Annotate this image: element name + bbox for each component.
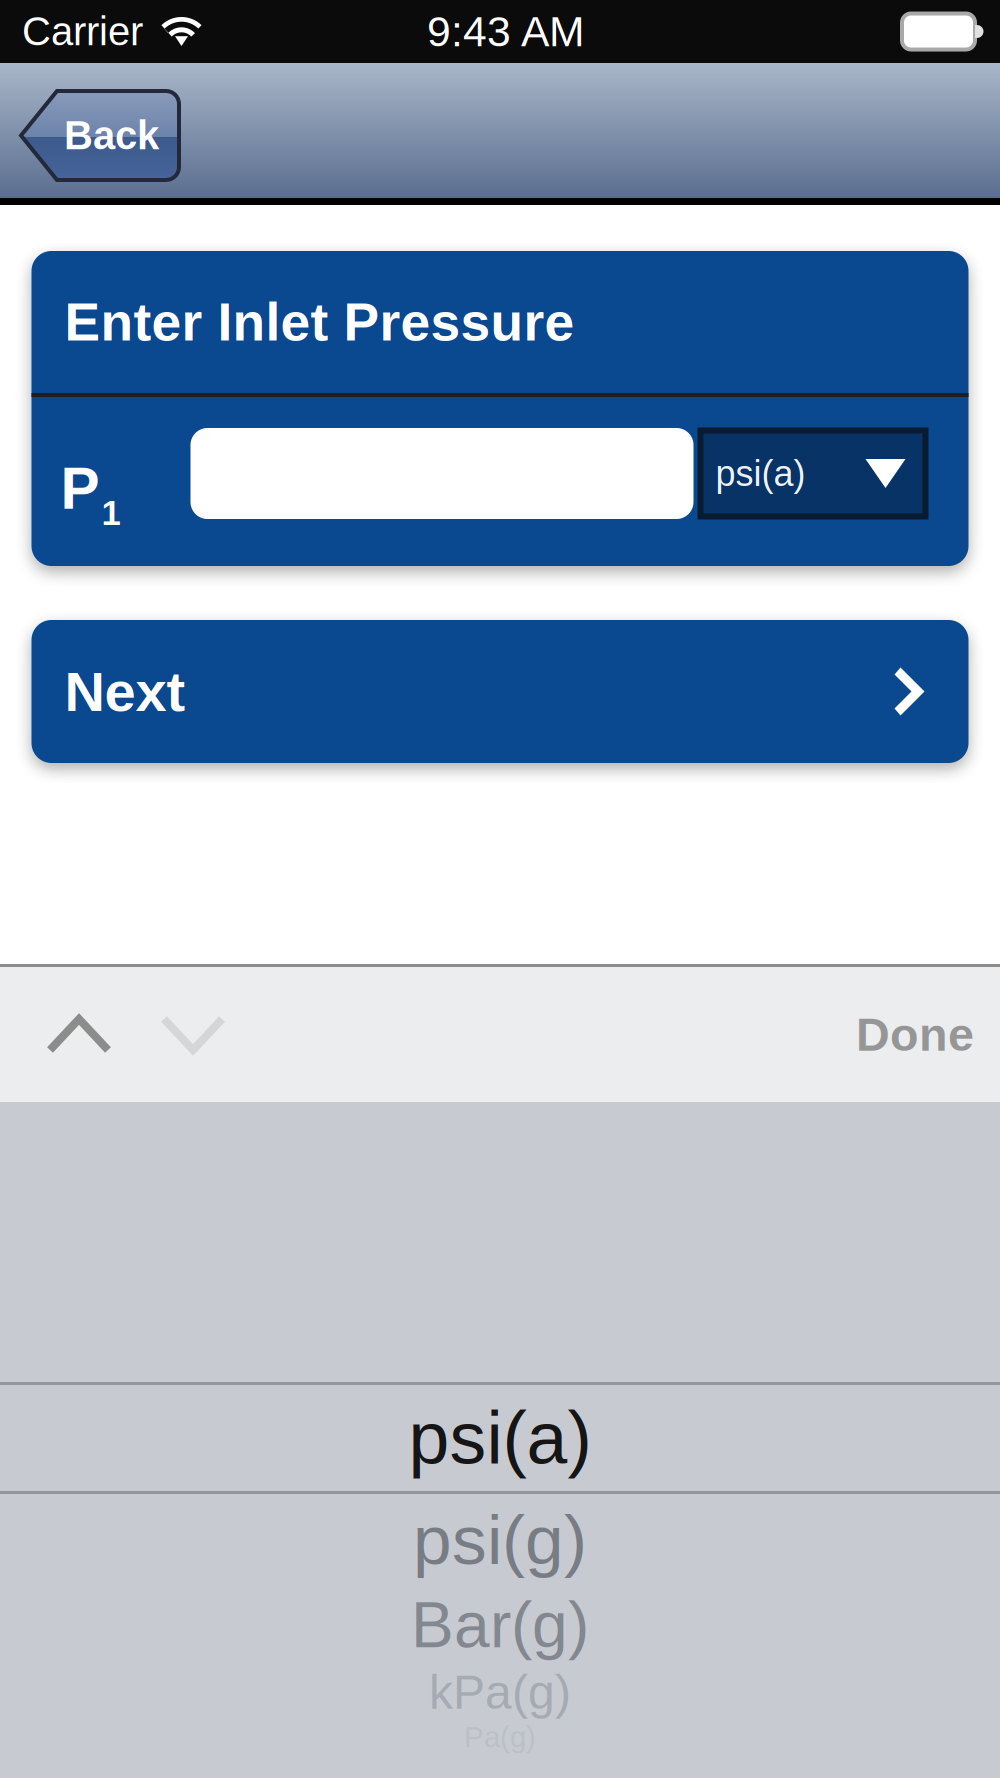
- staticText: 1: [101, 493, 120, 532]
- staticText: Bar(g): [411, 1589, 589, 1661]
- staticText: psi(a): [408, 1397, 591, 1479]
- staticText: Done: [856, 1008, 974, 1060]
- staticText: psi(a): [715, 453, 805, 494]
- button[interactable]: Back: [0, 79, 181, 182]
- button[interactable]: Next field: [136, 967, 250, 1102]
- button[interactable]: Next: [31, 620, 968, 763]
- staticText: 9:43 AM: [427, 8, 585, 55]
- staticText: kPa(g): [429, 1665, 571, 1719]
- staticText: Pa(g): [464, 1721, 536, 1753]
- button[interactable]: Previous field: [22, 967, 136, 1102]
- button[interactable]: Done: [830, 972, 1000, 1096]
- staticText: Next: [64, 660, 185, 723]
- button[interactable]: psi(a): [700, 430, 925, 516]
- staticText: Carrier: [22, 9, 143, 54]
- staticText: psi(g): [413, 1501, 587, 1579]
- staticText: Back: [64, 113, 159, 158]
- staticText: Enter Inlet Pressure: [64, 292, 574, 352]
- staticText: P: [60, 456, 99, 521]
